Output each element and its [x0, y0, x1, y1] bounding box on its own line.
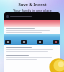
button[interactable]: Card 1 [5, 40, 11, 44]
button[interactable]: Card 4 [53, 40, 59, 44]
button[interactable]: Card 3 [37, 40, 43, 44]
button[interactable]: Card 2 [21, 40, 27, 44]
button[interactable]: Card 1 [4, 12, 60, 72]
staticText: Save & Invest [18, 2, 47, 8]
staticText: Your funds in one place [13, 8, 52, 13]
